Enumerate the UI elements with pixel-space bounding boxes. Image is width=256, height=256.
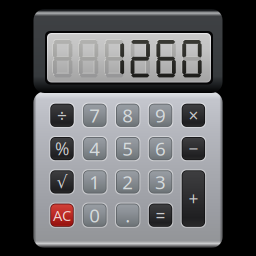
staticText: + [188,187,198,210]
staticText: 9 [155,103,166,128]
staticText: × [188,104,198,127]
button[interactable]: × [181,103,206,128]
button[interactable]: 5 [115,136,140,161]
staticText: 3 [155,169,166,194]
button[interactable]: 6 [148,136,173,161]
button[interactable]: − [181,136,206,161]
staticText: 6 [155,136,166,161]
button[interactable]: √ [49,169,75,194]
staticText: 0 [89,203,100,228]
staticText: 4 [89,136,100,161]
button[interactable]: . [115,203,140,228]
button[interactable]: % [49,136,75,161]
button[interactable]: = [148,203,173,228]
button[interactable]: 9 [148,103,173,128]
button[interactable]: ÷ [49,103,75,128]
button[interactable]: 3 [148,169,173,194]
button[interactable]: 0 [82,203,108,228]
button[interactable]: 1 [82,169,108,194]
staticText: √ [56,172,67,192]
button[interactable]: 2 [115,169,140,194]
button[interactable]: + [181,169,206,228]
staticText: 7 [89,103,100,128]
staticText: % [55,137,69,160]
staticText: 8 [122,103,133,128]
staticText: 2 [122,169,133,194]
staticText: = [156,204,166,227]
button[interactable]: 8 [115,103,140,128]
button[interactable]: 4 [82,136,108,161]
staticText: . [125,203,130,228]
staticText: AC [53,205,71,225]
staticText: 5 [122,136,133,161]
button[interactable]: 7 [82,103,108,128]
staticText: − [188,137,198,160]
staticText: ÷ [57,104,67,127]
staticText: 1 [89,169,100,194]
button[interactable]: AC [49,203,75,228]
